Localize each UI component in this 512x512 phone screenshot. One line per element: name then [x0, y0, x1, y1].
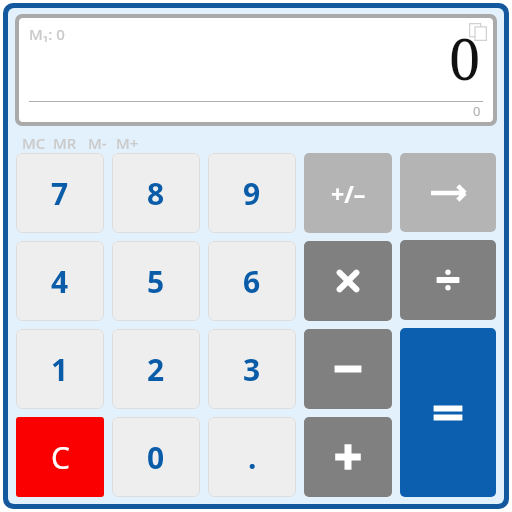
- staticText: 6: [243, 261, 261, 302]
- button[interactable]: 0: [112, 417, 200, 497]
- staticText: +/–: [331, 178, 366, 209]
- button[interactable]: Equals: [400, 328, 496, 497]
- staticText: 7: [51, 173, 69, 214]
- button[interactable]: 5: [112, 241, 200, 321]
- button[interactable]: M+: [116, 133, 139, 153]
- staticText: MC: [22, 133, 46, 153]
- staticText: M₁: 0: [29, 24, 65, 44]
- button[interactable]: Plus minus: [304, 153, 392, 233]
- staticText: 5: [147, 261, 165, 302]
- staticText: 2: [147, 349, 165, 390]
- button[interactable]: Divide: [400, 240, 496, 320]
- button[interactable]: Minus: [304, 329, 392, 409]
- staticText: 0: [449, 20, 481, 96]
- staticText: 4: [51, 261, 69, 302]
- button[interactable]: 6: [208, 241, 296, 321]
- staticText: MR: [53, 133, 77, 153]
- button[interactable]: Backspace: [400, 153, 496, 232]
- staticText: M+: [116, 133, 139, 153]
- button[interactable]: M-: [88, 133, 116, 153]
- button[interactable]: .: [208, 417, 296, 497]
- button[interactable]: MC: [22, 133, 53, 153]
- button[interactable]: C: [16, 417, 104, 497]
- button[interactable]: 2: [112, 329, 200, 409]
- staticText: 8: [147, 173, 165, 214]
- staticText: 1: [51, 349, 69, 390]
- button[interactable]: 9: [208, 153, 296, 233]
- button[interactable]: M₁: 0: [19, 18, 493, 122]
- button[interactable]: Plus: [304, 417, 392, 497]
- staticText: .: [248, 437, 257, 478]
- staticText: C: [51, 437, 70, 478]
- button[interactable]: MR: [53, 133, 88, 153]
- button[interactable]: 3: [208, 329, 296, 409]
- staticText: 3: [243, 349, 261, 390]
- button[interactable]: 1: [16, 329, 104, 409]
- staticText: M-: [88, 133, 107, 153]
- staticText: 9: [243, 173, 261, 214]
- button[interactable]: 7: [16, 153, 104, 233]
- staticText: 0: [147, 437, 165, 478]
- staticText: 0: [473, 102, 481, 120]
- button[interactable]: Multiply: [304, 241, 392, 321]
- button[interactable]: 4: [16, 241, 104, 321]
- button[interactable]: 8: [112, 153, 200, 233]
